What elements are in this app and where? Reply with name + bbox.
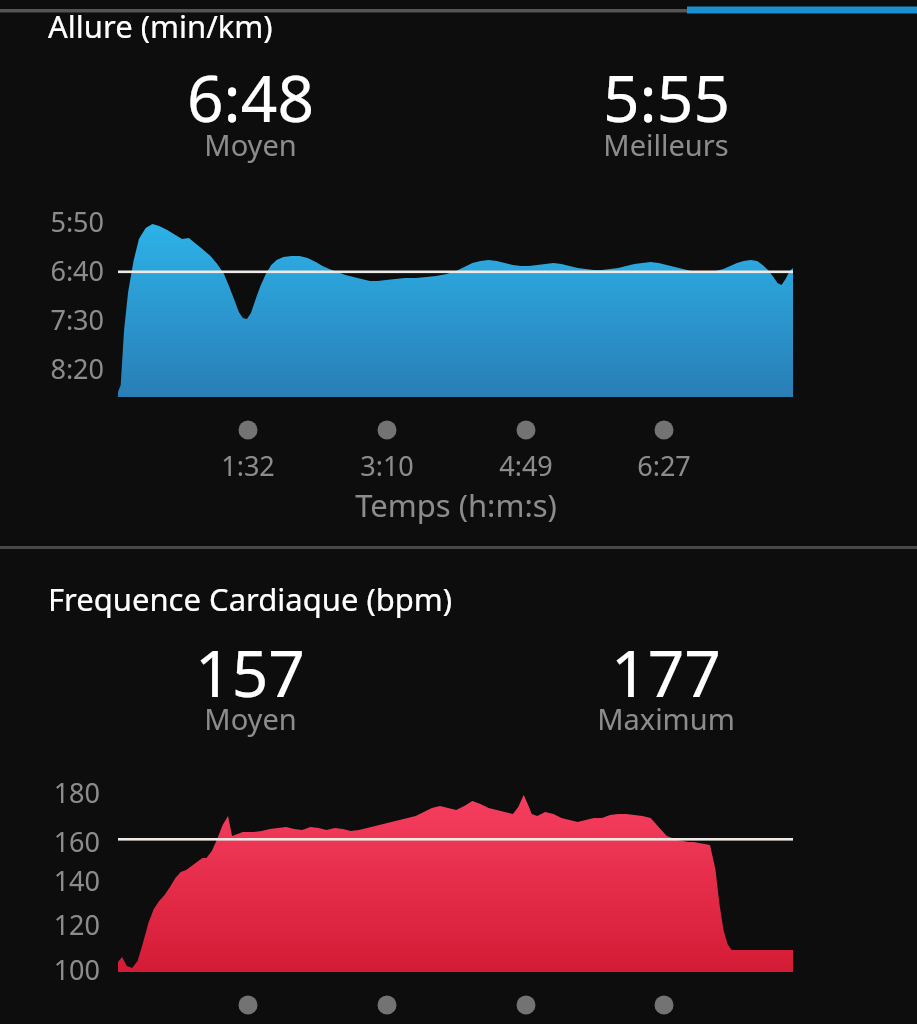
staticText: 6:27 [637, 447, 691, 484]
staticText: 1:32 [221, 447, 275, 484]
staticText: 7:30 [50, 301, 104, 338]
staticText: Temps (h:m:s) [355, 484, 557, 526]
button[interactable]: Frequence Cardiaque (bpm) chart [0, 549, 917, 1024]
staticText: 4:49 [499, 447, 553, 484]
staticText: 100 [53, 951, 100, 988]
staticText: 160 [53, 823, 100, 860]
staticText: 140 [53, 862, 100, 899]
staticText: 180 [53, 774, 100, 811]
staticText: 6:48 [187, 54, 314, 141]
staticText: 5:50 [50, 203, 104, 240]
staticText: 6:40 [50, 252, 104, 289]
staticText: Moyen [204, 699, 297, 738]
staticText: 8:20 [50, 350, 104, 387]
staticText: Frequence Cardiaque (bpm) [48, 578, 453, 620]
staticText: Allure (min/km) [48, 5, 273, 47]
staticText: Moyen [204, 125, 297, 164]
staticText: 177 [611, 629, 721, 716]
button[interactable]: Allure (min/km) chart [0, 0, 917, 546]
staticText: 5:55 [603, 54, 730, 141]
staticText: 3:10 [360, 447, 414, 484]
staticText: 157 [195, 629, 305, 716]
staticText: 120 [53, 906, 100, 943]
staticText: Maximum [597, 699, 735, 738]
staticText: Meilleurs [603, 125, 729, 164]
